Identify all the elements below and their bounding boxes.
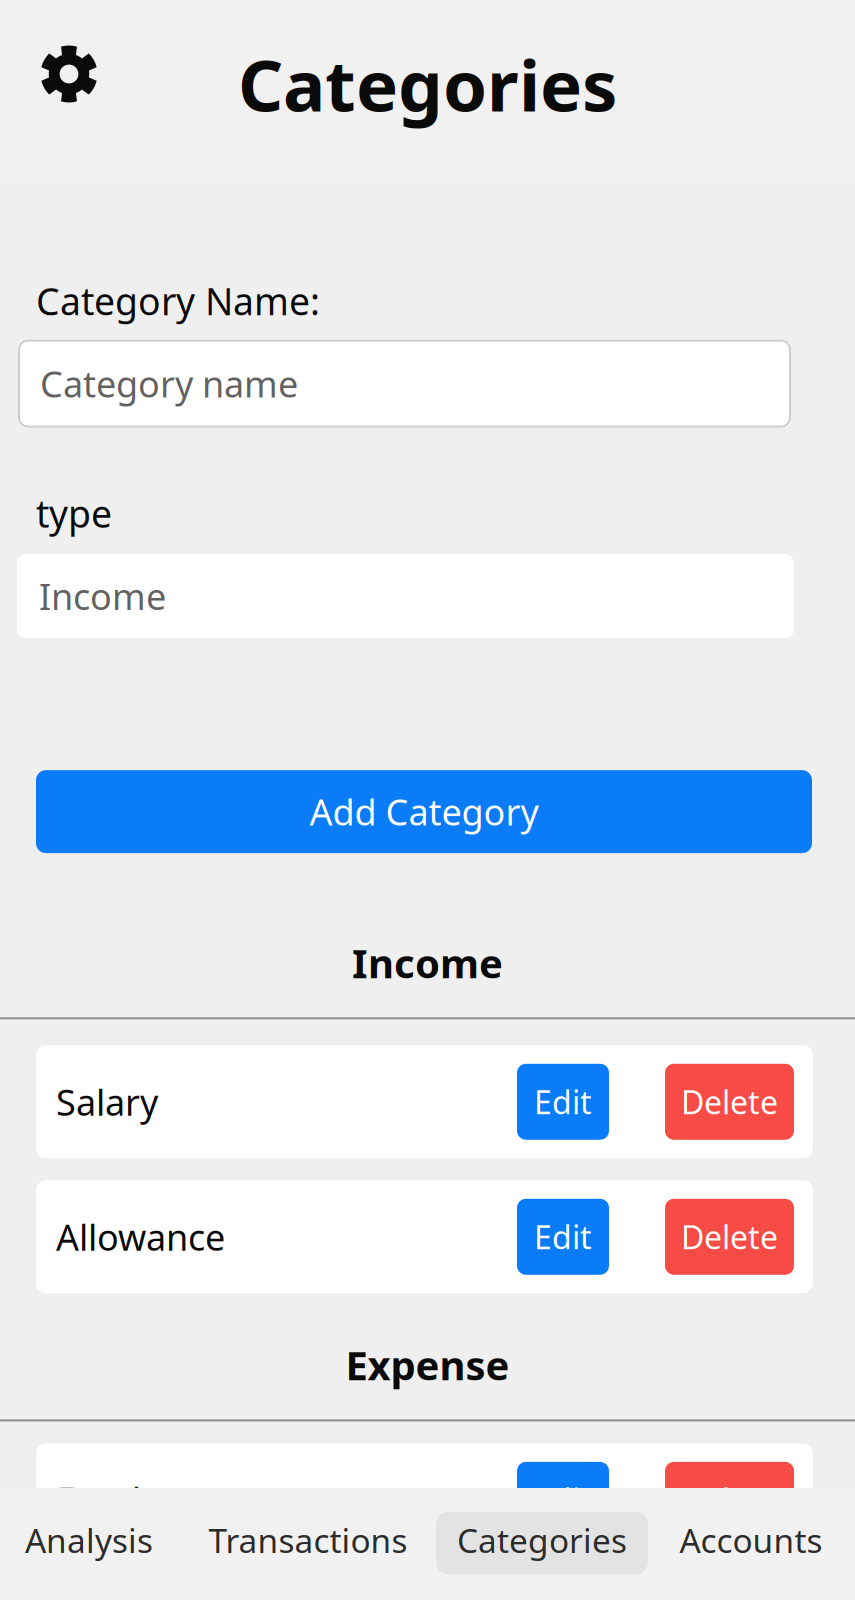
staticText: Income — [39, 572, 166, 620]
button[interactable]: Categories — [436, 1512, 648, 1574]
button[interactable]: Delete — [665, 1462, 794, 1538]
button[interactable]: Delete — [665, 1064, 794, 1140]
staticText: Allowance — [56, 1213, 225, 1261]
staticText: Add Category — [309, 788, 538, 836]
staticText: Category name — [40, 360, 298, 407]
button[interactable]: Edit — [517, 1462, 609, 1538]
staticText: Edit — [534, 1215, 592, 1258]
staticText: Analysis — [25, 1518, 153, 1562]
button[interactable]: Accounts — [661, 1512, 841, 1574]
button[interactable]: Settings — [0, 0, 138, 148]
button[interactable]: Transactions — [193, 1512, 423, 1574]
button[interactable]: Analysis — [9, 1512, 169, 1574]
staticText: Delete — [681, 1479, 778, 1521]
button[interactable]: Edit — [517, 1199, 609, 1275]
staticText: Food — [56, 1476, 141, 1524]
button[interactable]: Edit — [517, 1064, 609, 1140]
staticText: Transactions — [208, 1518, 407, 1562]
staticText: Salary — [56, 1078, 158, 1126]
staticText: Categories — [457, 1518, 627, 1562]
staticText: Categories — [238, 37, 617, 131]
staticText: Edit — [534, 1479, 592, 1521]
staticText: Accounts — [679, 1518, 822, 1562]
staticText: Category Name: — [36, 276, 320, 326]
staticText: Edit — [534, 1080, 592, 1123]
staticText: Delete — [681, 1215, 778, 1258]
button[interactable]: Add Category — [36, 770, 812, 853]
staticText: Delete — [681, 1080, 778, 1123]
staticText: Expense — [345, 1338, 509, 1391]
staticText: type — [36, 489, 112, 538]
button[interactable]: Delete — [665, 1199, 794, 1275]
staticText: Income — [352, 936, 503, 989]
